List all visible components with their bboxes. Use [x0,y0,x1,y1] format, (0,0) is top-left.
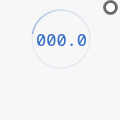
button[interactable]: Status indicator [103,0,118,15]
staticText: 000.0 [36,28,87,51]
button[interactable]: 000.0 [31,9,91,69]
